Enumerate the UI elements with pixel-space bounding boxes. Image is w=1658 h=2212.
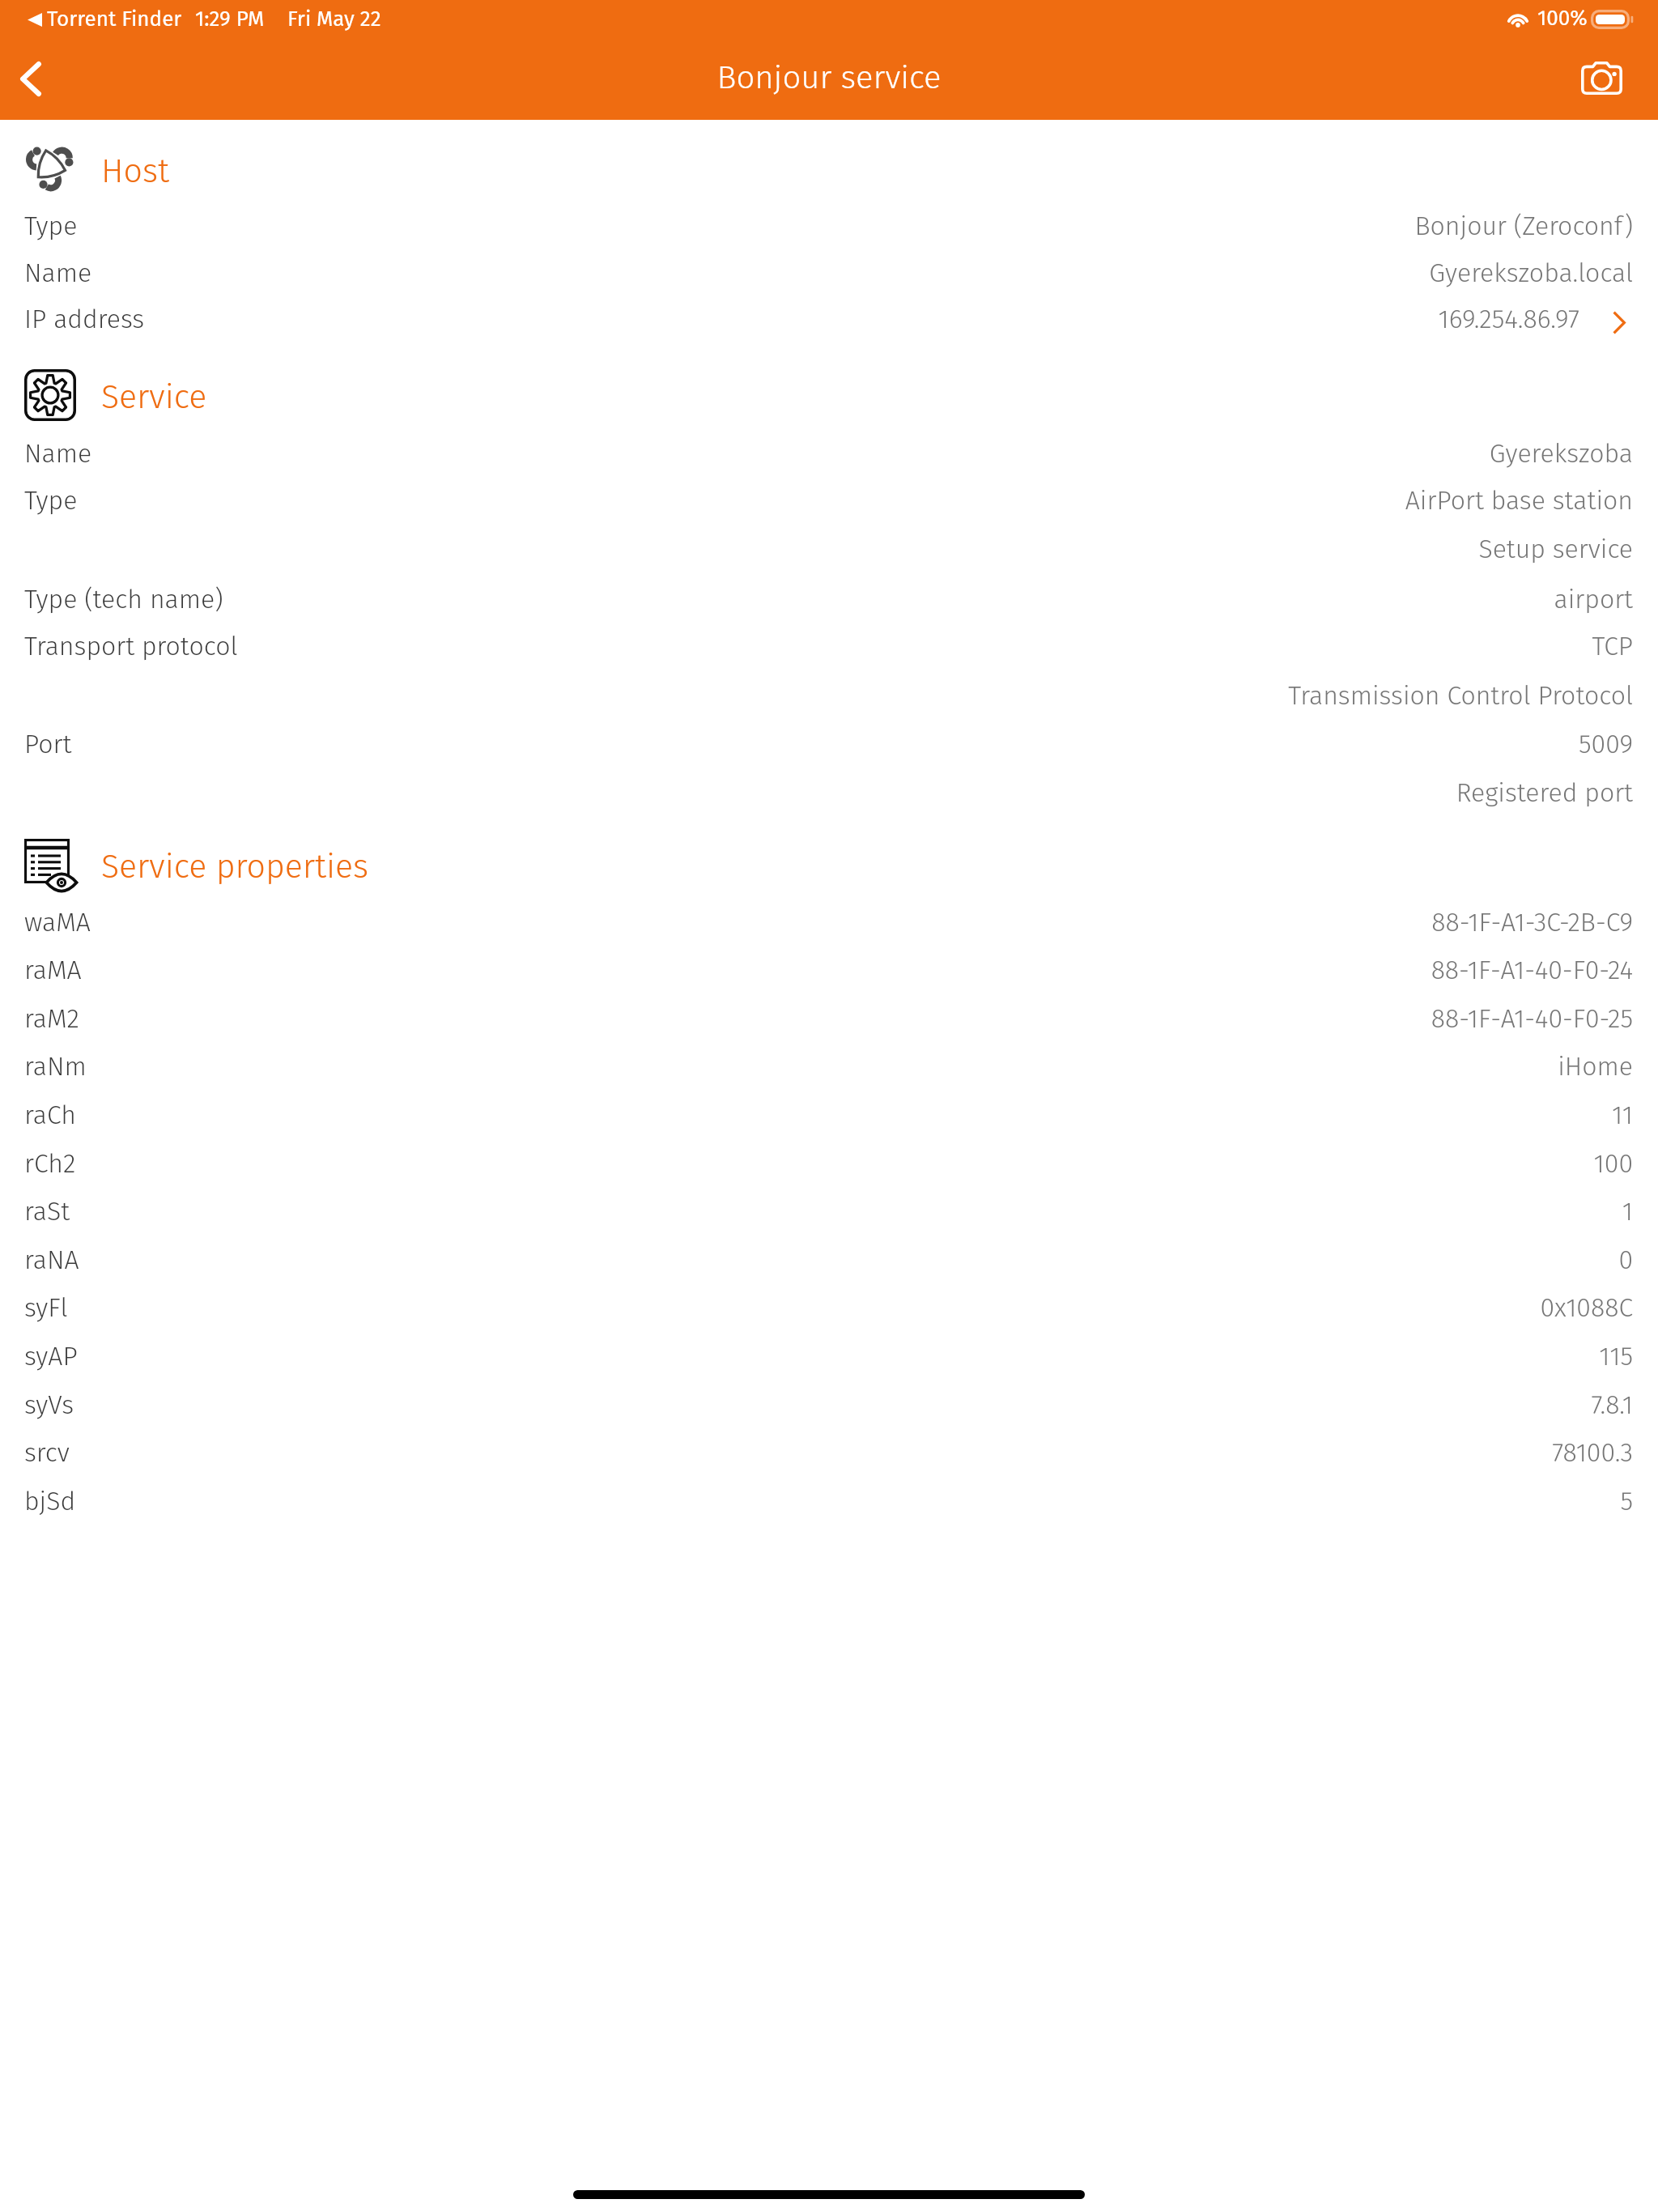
staticText: iHome (419, 1051, 1633, 1082)
button[interactable]: Name (0, 248, 1658, 296)
staticText: airport (419, 584, 1633, 615)
staticText: Gyerekszoba (419, 438, 1633, 469)
staticText: Fri May 22 (287, 6, 381, 32)
button[interactable]: Back (0, 39, 81, 120)
staticText: Name (24, 257, 92, 288)
staticText: Host (101, 151, 169, 191)
button[interactable]: Type (0, 475, 1658, 572)
staticText: 1:29 PM (195, 6, 265, 32)
staticText: 1 (419, 1196, 1633, 1227)
staticText: 169.254.86.97 (365, 304, 1579, 334)
staticText: raM2 (24, 1003, 79, 1034)
staticText: waMA (24, 907, 91, 938)
staticText: rCh2 (24, 1148, 76, 1179)
button[interactable]: raCh (0, 1090, 1658, 1138)
staticText: Torrent Finder (47, 6, 182, 32)
button[interactable]: IP address (0, 294, 1658, 342)
staticText: Port (24, 729, 72, 759)
staticText: 100% (1537, 6, 1588, 31)
button[interactable]: Name (0, 428, 1658, 477)
staticText: 100 (419, 1148, 1633, 1179)
staticText: Service (101, 377, 207, 417)
staticText: syVs (24, 1389, 74, 1420)
button[interactable]: Type (tech name) (0, 574, 1658, 623)
button[interactable]: waMA (0, 897, 1658, 946)
button[interactable]: raSt (0, 1186, 1658, 1235)
button[interactable]: bjSd (0, 1476, 1658, 1525)
staticText: 115 (419, 1341, 1633, 1372)
staticText: raNA (24, 1244, 79, 1275)
button[interactable]: Service properties (0, 827, 1658, 897)
button[interactable]: srcv (0, 1427, 1658, 1476)
staticText: Name (24, 438, 92, 469)
button[interactable]: rCh2 (0, 1138, 1658, 1187)
button[interactable]: Camera (1561, 39, 1658, 120)
button[interactable]: syVs (0, 1380, 1658, 1428)
button[interactable]: raMA (0, 945, 1658, 993)
staticText: syAP (24, 1341, 78, 1372)
staticText: Transmission Control Protocol (419, 680, 1633, 711)
staticText: Type (tech name) (24, 584, 223, 615)
button[interactable]: raM2 (0, 993, 1658, 1042)
button[interactable]: Type (0, 201, 1658, 249)
staticText: TCP (419, 631, 1633, 661)
staticText: raCh (24, 1100, 76, 1130)
staticText: 7.8.1 (419, 1389, 1633, 1420)
staticText: Setup service (419, 534, 1633, 564)
button[interactable]: raNm (0, 1041, 1658, 1090)
staticText: Type (24, 211, 78, 241)
staticText: raMA (24, 955, 82, 985)
staticText: 88-1F-A1-3C-2B-C9 (419, 907, 1633, 938)
staticText: 5009 (419, 729, 1633, 759)
button[interactable]: syFl (0, 1283, 1658, 1331)
staticText: Transport protocol (24, 631, 238, 661)
staticText: 0 (419, 1244, 1633, 1275)
staticText: 0x1088C (419, 1292, 1633, 1323)
staticText: 5 (419, 1486, 1633, 1516)
staticText: Bonjour (Zeroconf) (419, 211, 1633, 241)
button[interactable]: Port (0, 719, 1658, 816)
button[interactable]: syAP (0, 1331, 1658, 1380)
staticText: Type (24, 485, 78, 516)
button[interactable]: raNA (0, 1235, 1658, 1283)
staticText: Bonjour service (0, 58, 1658, 97)
staticText: 11 (419, 1100, 1633, 1130)
staticText: Registered port (419, 777, 1633, 808)
staticText: 88-1F-A1-40-F0-24 (419, 955, 1633, 985)
staticText: raSt (24, 1196, 70, 1227)
staticText: IP address (24, 304, 145, 334)
staticText: 88-1F-A1-40-F0-25 (419, 1003, 1633, 1034)
staticText: bjSd (24, 1486, 76, 1516)
staticText: Service properties (101, 847, 369, 887)
staticText: Gyerekszoba.local (419, 257, 1633, 288)
staticText: AirPort base station (419, 485, 1633, 516)
staticText: srcv (24, 1437, 70, 1468)
staticText: 78100.3 (419, 1437, 1633, 1468)
staticText: syFl (24, 1292, 68, 1323)
button[interactable]: Transport protocol (0, 621, 1658, 720)
button[interactable]: Host (0, 134, 1658, 203)
button[interactable]: Service (0, 358, 1658, 428)
staticText: raNm (24, 1051, 87, 1082)
